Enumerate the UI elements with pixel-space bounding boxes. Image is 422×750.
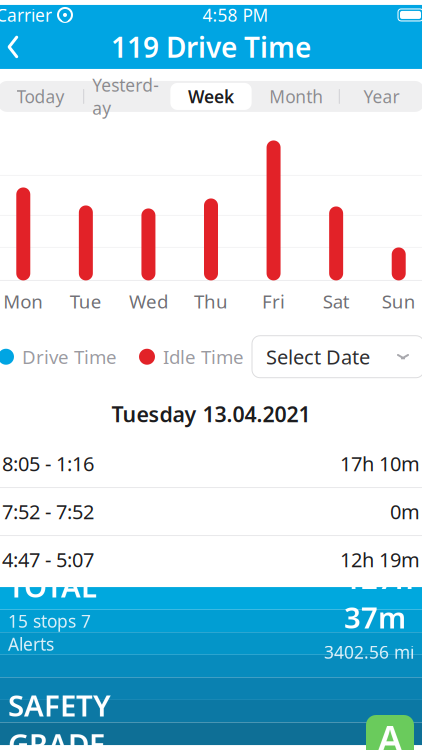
- button[interactable]: 4:47 - 5:07: [0, 536, 422, 583]
- staticText: 15 stops 7 Alerts: [8, 610, 91, 656]
- staticText: Drive Time: [22, 344, 117, 369]
- staticText: Idle Time: [163, 344, 244, 369]
- staticText: 0m: [390, 498, 420, 525]
- staticText: 17h 10m: [340, 450, 420, 477]
- staticText: Today: [17, 85, 65, 108]
- staticText: 7:52 - 7:52: [2, 498, 94, 525]
- staticText: Tuesday 13.04.2021: [111, 400, 310, 428]
- staticText: Tue: [70, 289, 102, 314]
- staticText: Month: [269, 85, 323, 108]
- staticText: Carrier: [0, 3, 52, 26]
- button[interactable]: 8:05 - 1:16: [0, 440, 422, 487]
- staticText: 3402.56 mi: [324, 640, 414, 663]
- staticText: Yesterday: [92, 73, 159, 119]
- button[interactable]: Week: [168, 81, 254, 112]
- staticText: Mon: [3, 289, 43, 314]
- button[interactable]: Back: [0, 29, 30, 65]
- staticText: Sat: [323, 289, 350, 314]
- staticText: 4:47 - 5:07: [2, 546, 94, 573]
- staticText: 8:05 - 1:16: [2, 450, 94, 477]
- button[interactable]: Year: [339, 81, 422, 112]
- staticText: Year: [363, 85, 399, 108]
- staticText: 4:58 PM: [202, 3, 268, 26]
- staticText: Select Date: [266, 343, 370, 370]
- staticText: SAFETY GRADE: [8, 686, 111, 750]
- staticText: A: [377, 713, 402, 750]
- staticText: Sun: [382, 289, 416, 314]
- button[interactable]: Today: [0, 81, 83, 112]
- staticText: 119 Drive Time: [111, 28, 311, 65]
- staticText: 127h 37m: [344, 559, 414, 636]
- staticText: 12h 19m: [340, 546, 420, 573]
- staticText: Week: [188, 85, 234, 108]
- staticText: TOTAL: [8, 567, 97, 606]
- staticText: Wed: [129, 289, 168, 314]
- button[interactable]: Select Date: [252, 336, 422, 378]
- staticText: Fri: [262, 289, 285, 314]
- button[interactable]: Yesterday: [83, 81, 168, 112]
- button[interactable]: 7:52 - 7:52: [0, 488, 422, 535]
- button[interactable]: Month: [254, 81, 339, 112]
- staticText: Thu: [194, 289, 228, 314]
